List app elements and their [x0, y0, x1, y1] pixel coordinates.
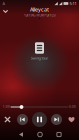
- button[interactable]: Collapse: [0, 6, 11, 17]
- staticText: PLAYING FROM PLAYLIST: [23, 14, 55, 17]
- button[interactable]: Pause: [31, 111, 48, 128]
- button[interactable]: Shuffle: [1, 112, 14, 126]
- staticText: 1:09: [3, 105, 10, 109]
- staticText: Swing tour: [30, 55, 48, 61]
- button[interactable]: Recents: [51, 128, 67, 140]
- staticText: 5:11: [69, 1, 76, 6]
- button[interactable]: Home: [32, 128, 48, 140]
- button[interactable]: Previous track: [16, 113, 29, 126]
- button[interactable]: Back: [13, 128, 29, 140]
- button[interactable]: Favourite: [65, 112, 78, 126]
- button[interactable]: Next track: [50, 113, 63, 126]
- staticText: Alleycat: [30, 6, 49, 13]
- staticText: 3:39: [69, 105, 76, 109]
- staticText: A: [2, 1, 5, 6]
